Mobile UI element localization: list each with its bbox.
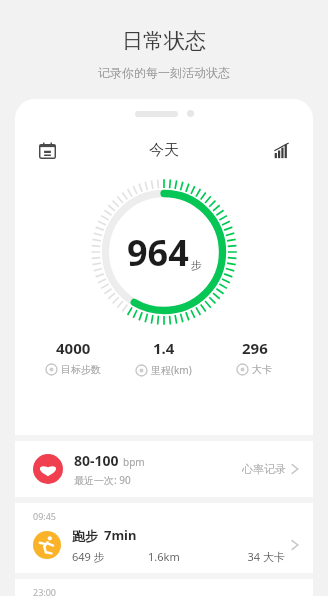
staticText: 23:00 <box>33 586 57 596</box>
staticText: 649 步 <box>72 549 148 564</box>
staticText: 最近一次: 90 <box>74 473 131 487</box>
staticText: 296 <box>242 338 268 358</box>
staticText: 目标步数 <box>61 363 101 376</box>
staticText: 1.6km <box>148 549 224 564</box>
staticText: 里程(km) <box>151 363 192 377</box>
button[interactable]: 4000 <box>28 338 118 376</box>
staticText: 964 <box>127 228 189 277</box>
staticText: 80-100 <box>74 451 119 470</box>
button[interactable]: 09:45 <box>15 503 313 573</box>
staticText: 1.4 <box>153 338 175 358</box>
staticText: 7min <box>104 526 137 544</box>
staticText: 09:45 <box>33 510 57 522</box>
button[interactable]: 23:00 <box>15 579 313 596</box>
button[interactable]: Statistics <box>266 135 296 165</box>
staticText: 日常状态 <box>0 28 328 54</box>
button[interactable]: Calendar <box>32 135 62 165</box>
staticText: 心率记录 <box>242 462 286 476</box>
staticText: bpm <box>123 455 145 469</box>
staticText: 记录你的每一刻活动状态 <box>0 65 328 80</box>
staticText: 跑步 <box>72 528 98 544</box>
staticText: 今天 <box>149 141 179 160</box>
staticText: 4000 <box>56 338 91 358</box>
button[interactable]: 1.4 <box>118 338 209 377</box>
staticText: 34 大卡 <box>224 549 285 564</box>
button[interactable]: 296 <box>209 338 300 376</box>
button[interactable]: 80-100 <box>15 441 313 497</box>
staticText: 步 <box>191 258 202 272</box>
staticText: 大卡 <box>252 363 272 376</box>
